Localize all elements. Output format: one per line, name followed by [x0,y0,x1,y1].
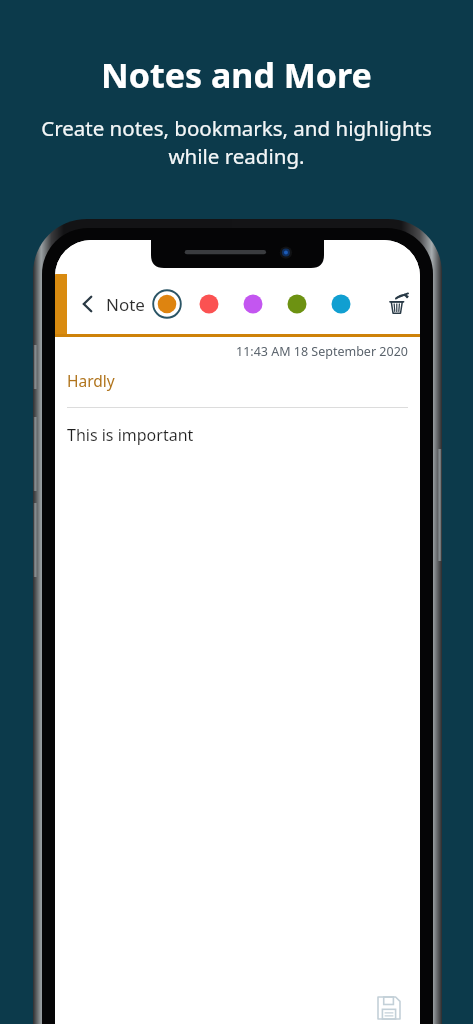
staticText: Hardly [67,370,115,391]
staticText: 11:43 AM 18 September 2020 [236,343,408,360]
button[interactable]: Delete note [380,287,414,321]
button[interactable]: Red highlight [196,291,222,317]
staticText: This is important [67,424,194,446]
button[interactable]: Save note [372,991,406,1024]
staticText: Note [106,293,145,316]
button[interactable]: Back [73,289,103,319]
button[interactable]: Purple highlight [240,291,266,317]
button[interactable]: Green highlight [284,291,310,317]
button[interactable]: Blue highlight [328,291,354,317]
staticText: Notes and More [101,52,372,98]
staticText: Create notes, bookmarks, and highlights … [41,114,432,170]
button[interactable]: Orange highlight [152,289,182,319]
